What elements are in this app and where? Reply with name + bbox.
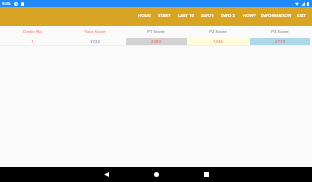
button[interactable]: Recent apps xyxy=(181,167,231,182)
staticText: LAST 10 xyxy=(178,12,194,18)
staticText: 2383 xyxy=(151,38,161,44)
staticText: EXIT xyxy=(297,12,306,18)
staticText: HOW? xyxy=(243,12,256,18)
staticText: 9:36 xyxy=(2,1,11,7)
button[interactable]: HOW? xyxy=(240,7,259,26)
staticText: 2779 xyxy=(275,38,285,44)
button[interactable]: Back xyxy=(81,167,131,182)
staticText: Your Score xyxy=(84,28,106,34)
button[interactable] xyxy=(0,37,312,45)
staticText: INFORMATION xyxy=(261,12,292,18)
button[interactable]: INFO1 xyxy=(198,7,217,26)
staticText: HOME xyxy=(138,12,151,18)
staticText: 3722 xyxy=(90,38,100,44)
staticText: 1 xyxy=(31,38,34,44)
staticText: INFO1 xyxy=(201,12,214,18)
button[interactable]: HOME xyxy=(135,7,154,26)
button[interactable]: INFORMATION xyxy=(258,7,295,26)
staticText: P3 Score xyxy=(271,28,289,34)
staticText: P1 Score xyxy=(147,28,165,34)
staticText: 1336 xyxy=(213,38,223,44)
staticText: P2 Score xyxy=(209,28,227,34)
button[interactable]: Home xyxy=(131,167,181,182)
button[interactable]: EXIT xyxy=(294,7,309,26)
staticText: Order No xyxy=(23,28,42,34)
button[interactable]: INFO 2 xyxy=(218,7,239,26)
button[interactable]: START xyxy=(155,7,174,26)
staticText: INFO 2 xyxy=(221,12,236,18)
staticText: START xyxy=(158,12,171,18)
button[interactable]: LAST 10 xyxy=(175,7,197,26)
